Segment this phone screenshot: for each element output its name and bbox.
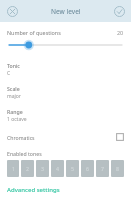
staticText: 5 bbox=[71, 165, 74, 172]
staticText: Enabled tones bbox=[7, 150, 42, 157]
staticText: 20 bbox=[117, 29, 124, 36]
button[interactable]: 3 bbox=[36, 160, 49, 177]
button[interactable]: Number of questions bbox=[7, 29, 124, 36]
staticText: 8 bbox=[116, 165, 119, 172]
staticText: 2 bbox=[26, 165, 29, 172]
staticText: Range bbox=[7, 108, 23, 115]
staticText: 1 bbox=[12, 165, 15, 172]
button[interactable]: Tonic bbox=[7, 62, 124, 77]
button[interactable]: 4 bbox=[51, 160, 64, 177]
button[interactable]: 5 bbox=[66, 160, 79, 177]
button[interactable]: Close bbox=[5, 4, 19, 18]
staticText: Advanced settings bbox=[7, 186, 60, 194]
staticText: C bbox=[7, 70, 11, 77]
staticText: 6 bbox=[86, 165, 89, 172]
staticText: Scale bbox=[7, 85, 20, 92]
staticText: major bbox=[7, 93, 21, 100]
staticText: 3 bbox=[41, 165, 44, 172]
staticText: 1 octave bbox=[7, 116, 27, 123]
staticText: 7 bbox=[101, 165, 104, 172]
button[interactable]: Chromatics bbox=[7, 130, 124, 144]
button[interactable]: Scale bbox=[7, 85, 124, 100]
button[interactable]: 2 bbox=[21, 160, 34, 177]
button[interactable]: 1 bbox=[7, 160, 19, 177]
staticText: Tonic bbox=[7, 62, 20, 69]
button[interactable]: Number of questions slider bbox=[7, 40, 124, 50]
staticText: 4 bbox=[56, 165, 59, 172]
button[interactable]: Range bbox=[7, 108, 124, 123]
button[interactable]: 7 bbox=[96, 160, 109, 177]
button[interactable]: 6 bbox=[81, 160, 94, 177]
button[interactable]: Confirm bbox=[112, 4, 126, 18]
staticText: Number of questions bbox=[7, 29, 61, 36]
staticText: Chromatics bbox=[7, 134, 35, 141]
staticText: New level bbox=[51, 7, 81, 16]
button[interactable]: 8 bbox=[111, 160, 124, 177]
